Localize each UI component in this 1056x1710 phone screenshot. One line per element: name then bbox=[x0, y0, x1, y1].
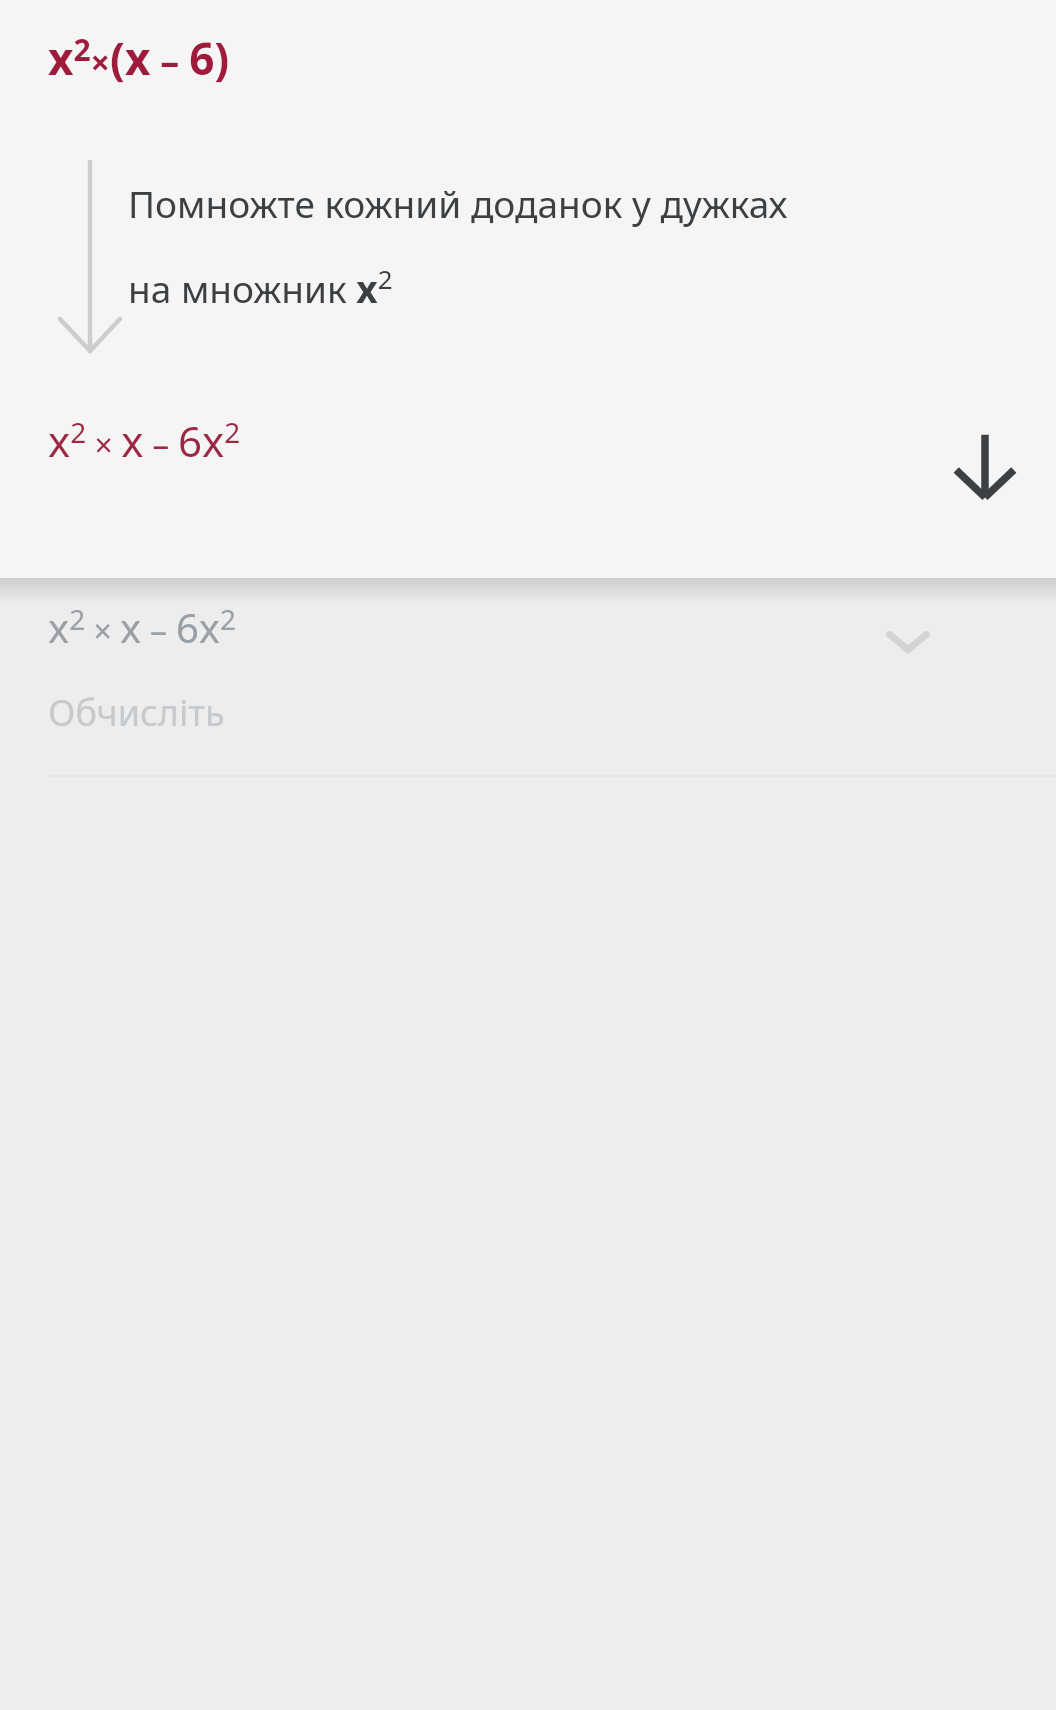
button[interactable]: x2 × x – 6x2 bbox=[0, 578, 1056, 778]
button[interactable]: Expand bbox=[845, 578, 970, 703]
button[interactable]: Next step bbox=[920, 400, 1050, 530]
staticText: x2 × x – 6x2 bbox=[48, 412, 241, 469]
staticText: x2 × x – 6x2 bbox=[48, 600, 237, 655]
staticText: x2×(x – 6) bbox=[48, 28, 230, 88]
staticText: Обчисліть bbox=[48, 688, 225, 737]
staticText: Помножте кожний доданок у дужках на множ… bbox=[128, 178, 788, 314]
